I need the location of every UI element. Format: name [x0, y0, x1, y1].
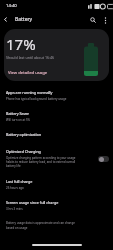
staticText: Will turn on at 5% — [6, 118, 30, 122]
staticText: Optimized Charging — [6, 149, 41, 154]
staticText: 3 hrs 3 mins — [6, 207, 23, 211]
button[interactable]: Search — [87, 14, 99, 26]
staticText: Should last until about 16:46 — [6, 55, 55, 60]
button[interactable]: More options — [99, 14, 111, 26]
staticText: Battery usage data is approximate and ca… — [6, 221, 75, 229]
button[interactable]: Battery Saver — [0, 106, 113, 127]
staticText: Apps are running normally — [6, 90, 53, 95]
staticText: Battery optimization — [6, 132, 42, 137]
staticText: Battery — [15, 16, 33, 23]
staticText: View detailed usage — [8, 70, 48, 76]
staticText: 26 hours ago — [6, 186, 24, 190]
button[interactable]: Optimized Charging — [0, 144, 113, 173]
button[interactable]: Last full charge — [0, 174, 113, 195]
button[interactable]: Screen usage since full charge — [0, 195, 113, 216]
staticText: Screen usage since full charge — [6, 200, 59, 205]
staticText: 14:40 — [6, 3, 17, 9]
staticText: Optimize charging pattern according to y… — [6, 156, 84, 168]
staticText: 17% — [6, 34, 36, 54]
button[interactable]: View detailed usage — [6, 69, 50, 77]
staticText: Battery Saver — [6, 111, 30, 116]
staticText: Phone has typical background battery usa… — [6, 97, 67, 101]
button[interactable]: Apps are running normally — [0, 85, 113, 106]
button[interactable]: Battery optimization — [0, 127, 113, 142]
staticText: Last full charge — [6, 179, 33, 184]
button[interactable]: Back — [0, 14, 11, 25]
